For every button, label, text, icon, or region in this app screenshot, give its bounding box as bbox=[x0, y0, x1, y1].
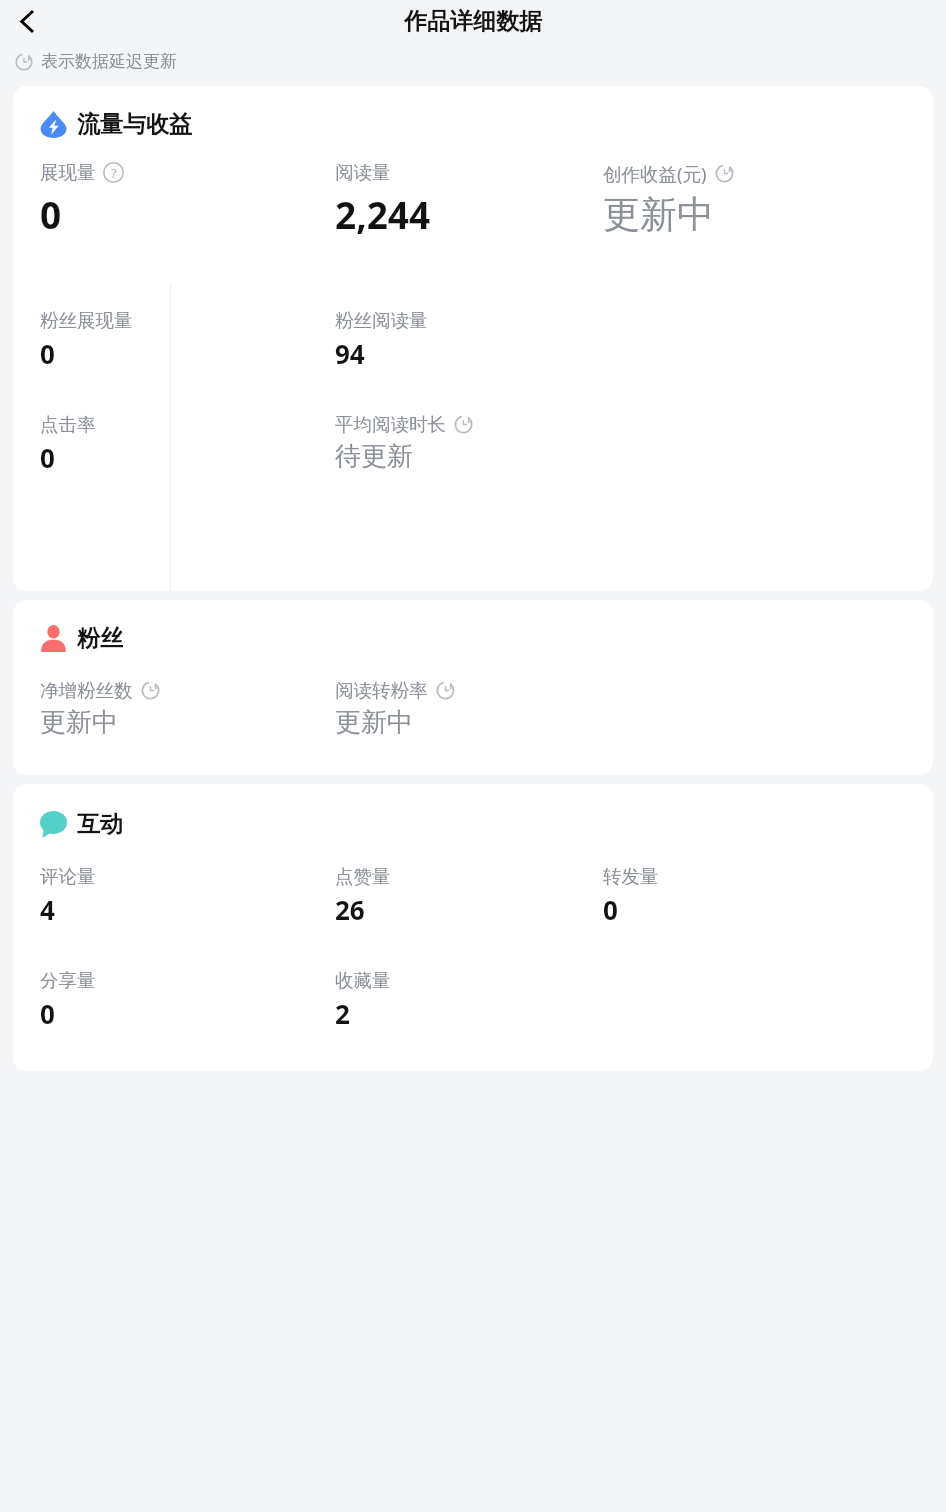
staticText: 转发量 bbox=[603, 865, 659, 888]
staticText: 表示数据延迟更新 bbox=[41, 51, 177, 72]
staticText: 净增粉丝数 bbox=[40, 679, 133, 702]
staticText: 创作收益(元) bbox=[603, 161, 707, 186]
staticText: 0 bbox=[40, 189, 62, 239]
staticText: 更新中 bbox=[335, 706, 413, 739]
staticText: ? bbox=[111, 164, 117, 182]
staticText: 点击率 bbox=[40, 413, 96, 436]
staticText: 阅读量 bbox=[335, 161, 391, 184]
staticText: 0 bbox=[40, 336, 55, 371]
staticText: 待更新 bbox=[335, 440, 413, 473]
staticText: 分享量 bbox=[40, 969, 96, 992]
staticText: 收藏量 bbox=[335, 969, 391, 992]
button[interactable]: 流量与收益 bbox=[13, 86, 933, 591]
staticText: 26 bbox=[335, 892, 365, 927]
staticText: 阅读转粉率 bbox=[335, 679, 428, 702]
staticText: 更新中 bbox=[40, 706, 118, 739]
staticText: 评论量 bbox=[40, 865, 96, 888]
button[interactable]: Back bbox=[7, 1, 47, 41]
staticText: 0 bbox=[40, 440, 55, 475]
staticText: 平均阅读时长 bbox=[335, 413, 446, 436]
staticText: 粉丝阅读量 bbox=[335, 309, 428, 332]
staticText: 94 bbox=[335, 336, 365, 371]
staticText: 粉丝 bbox=[77, 624, 123, 653]
button[interactable]: 粉丝 bbox=[13, 600, 933, 775]
staticText: 流量与收益 bbox=[77, 110, 192, 139]
staticText: 作品详细数据 bbox=[404, 7, 542, 36]
staticText: 粉丝展现量 bbox=[40, 309, 133, 332]
staticText: 互动 bbox=[77, 810, 123, 839]
staticText: 0 bbox=[40, 996, 55, 1031]
staticText: 更新中 bbox=[603, 191, 714, 238]
staticText: 展现量 bbox=[40, 161, 96, 184]
staticText: 点赞量 bbox=[335, 865, 391, 888]
staticText: 4 bbox=[40, 892, 55, 927]
button[interactable]: 互动 bbox=[13, 784, 933, 1071]
staticText: 0 bbox=[603, 892, 618, 927]
staticText: 2 bbox=[335, 996, 350, 1031]
staticText: 2,244 bbox=[335, 189, 431, 239]
